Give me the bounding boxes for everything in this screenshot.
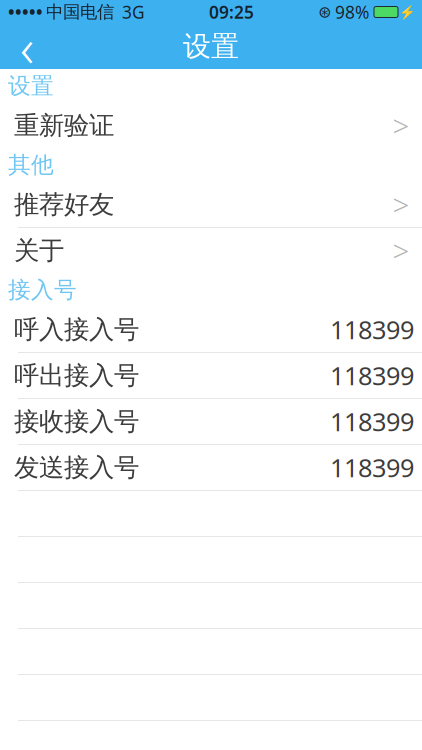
staticText: 中国电信 bbox=[46, 1, 114, 23]
staticText: ⚡ bbox=[399, 4, 416, 20]
staticText: > bbox=[392, 106, 409, 145]
staticText: 98% bbox=[335, 0, 369, 23]
staticText: 118399 bbox=[330, 313, 414, 346]
staticText: 设置 bbox=[8, 72, 54, 100]
staticText: > bbox=[392, 231, 409, 270]
staticText: 关于 bbox=[14, 235, 64, 266]
button[interactable]: Back bbox=[0, 24, 54, 69]
staticText: ⊛ bbox=[318, 3, 331, 21]
staticText: 呼入接入号 bbox=[14, 314, 139, 345]
button[interactable]: 关于 bbox=[0, 228, 422, 273]
staticText: 118399 bbox=[330, 451, 414, 484]
staticText: > bbox=[392, 185, 409, 224]
staticText: 3G bbox=[122, 0, 145, 23]
staticText: 其他 bbox=[8, 151, 54, 179]
staticText: 呼出接入号 bbox=[14, 360, 139, 391]
staticText: 设置 bbox=[183, 29, 239, 64]
staticText: ••••• bbox=[8, 0, 43, 23]
staticText: 接入号 bbox=[8, 276, 77, 304]
staticText: ‹ bbox=[20, 11, 34, 82]
staticText: 09:25 bbox=[209, 0, 254, 23]
staticText: 118399 bbox=[330, 359, 414, 392]
staticText: 重新验证 bbox=[14, 110, 114, 141]
staticText: 发送接入号 bbox=[14, 452, 139, 483]
staticText: 推荐好友 bbox=[14, 189, 114, 220]
staticText: 接收接入号 bbox=[14, 406, 139, 437]
button[interactable]: 推荐好友 bbox=[0, 182, 422, 227]
staticText: 118399 bbox=[330, 405, 414, 438]
button[interactable]: 重新验证 bbox=[0, 103, 422, 148]
